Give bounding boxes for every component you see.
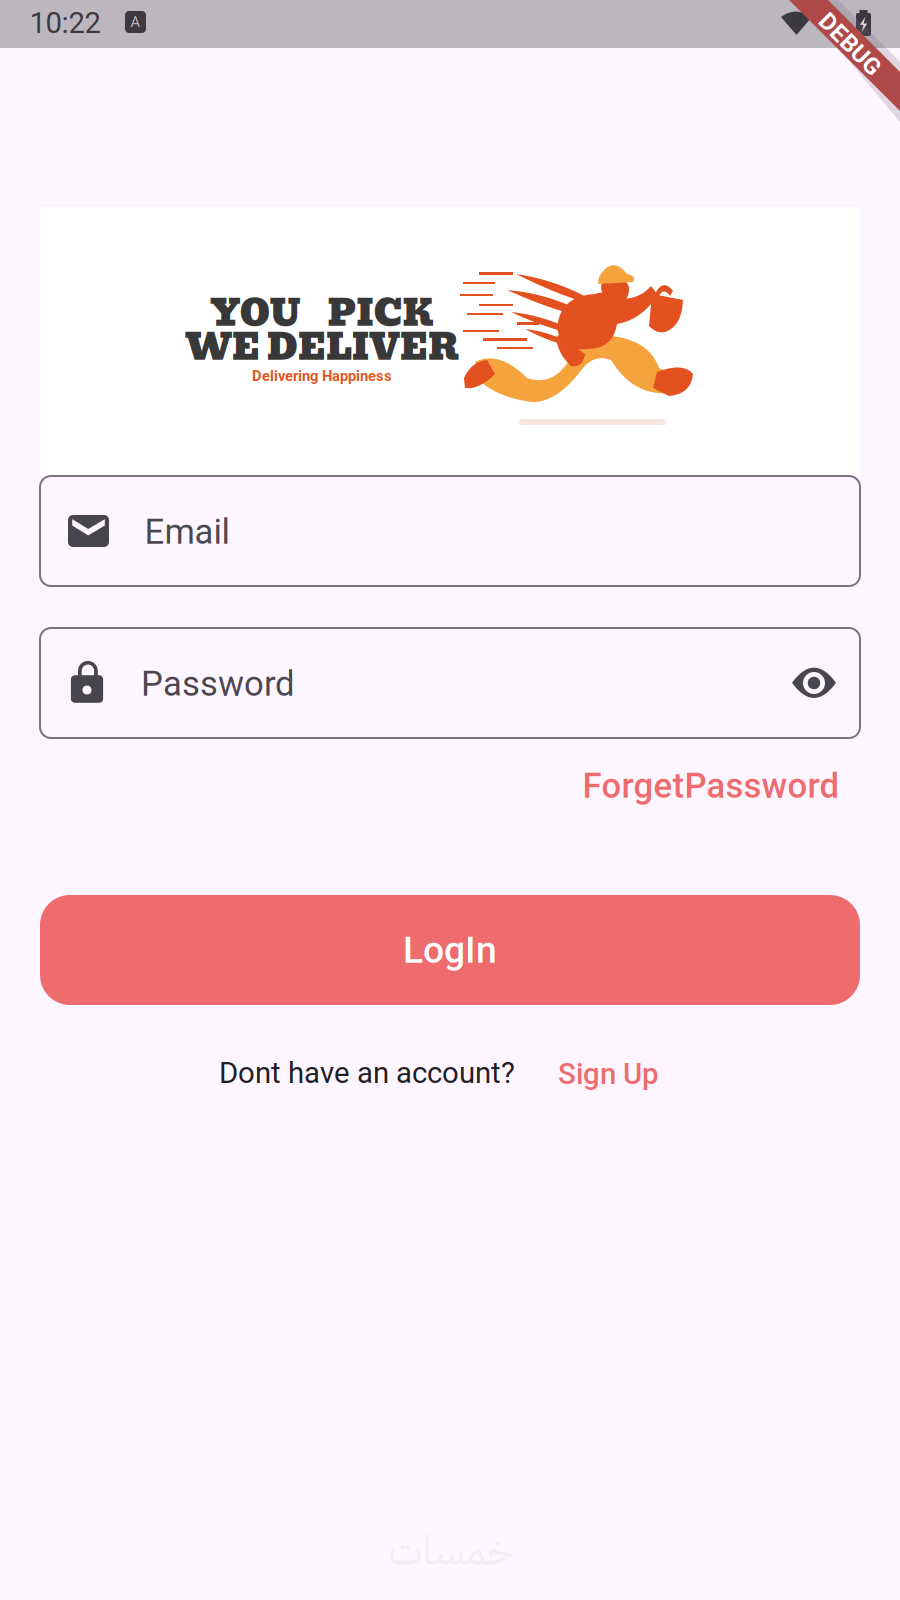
- staticText: Delivering Happiness: [252, 367, 392, 385]
- staticText: ForgetPassword: [582, 766, 839, 806]
- staticText: A: [130, 13, 140, 31]
- button[interactable]: Sign Up: [538, 1049, 678, 1099]
- staticText: DEBUG: [811, 30, 888, 58]
- staticText: Password: [141, 664, 295, 704]
- staticText: Dont have an account?: [219, 1056, 515, 1090]
- staticText: PICK: [327, 284, 433, 342]
- staticText: YOU: [210, 284, 300, 342]
- staticText: LogIn: [403, 928, 497, 972]
- staticText: 10:22: [29, 6, 100, 40]
- staticText: WE DELIVER: [185, 318, 459, 376]
- staticText: Sign Up: [558, 1057, 658, 1091]
- button[interactable]: Show password: [768, 653, 860, 713]
- staticText: Email: [144, 512, 229, 552]
- button[interactable]: ForgetPassword: [576, 761, 846, 811]
- button[interactable]: LogIn: [40, 895, 860, 1005]
